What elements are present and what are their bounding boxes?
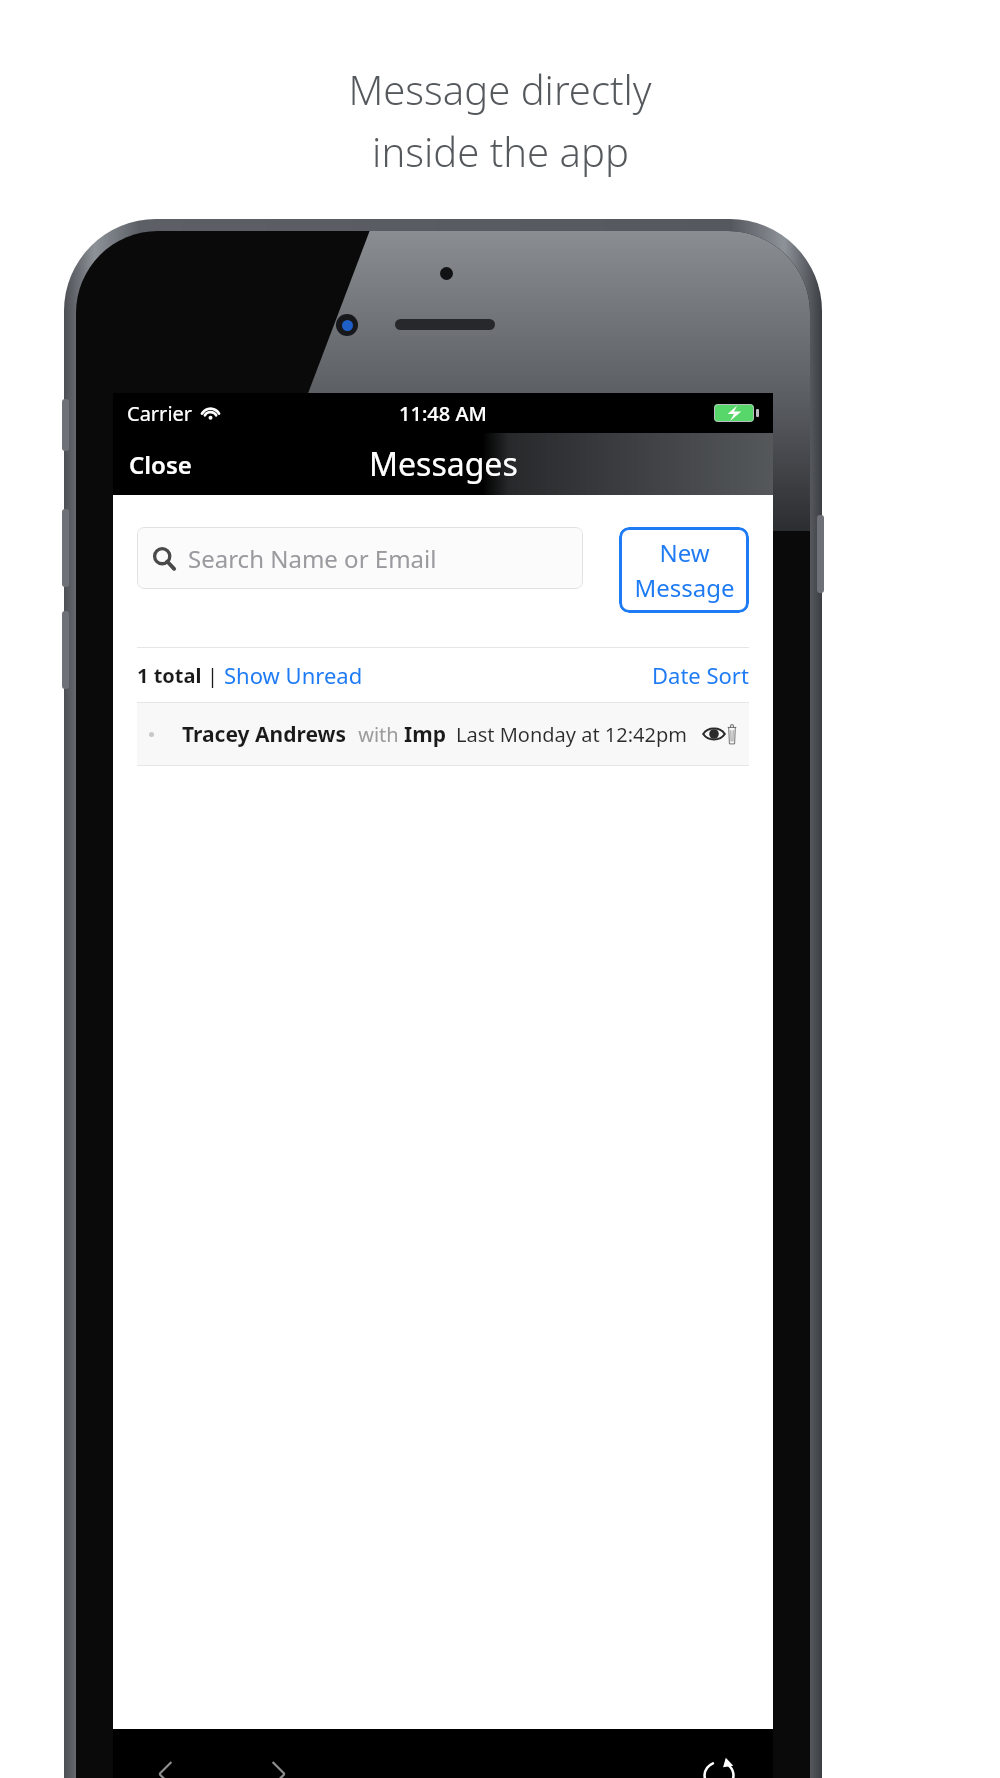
staticText: Date Sort: [652, 660, 749, 690]
staticText: Show Unread: [224, 660, 363, 690]
staticText: inside the app: [372, 124, 629, 178]
staticText: Carrier: [127, 400, 193, 427]
staticText: Close: [129, 448, 192, 481]
staticText: Messages: [369, 442, 518, 486]
button[interactable]: Reload: [691, 1746, 747, 1778]
button[interactable]: Tracey Andrews: [137, 703, 749, 765]
button[interactable]: Mark as read: [701, 721, 727, 747]
staticText: 11:48 AM: [399, 400, 487, 427]
button[interactable]: New: [619, 527, 749, 613]
staticText: with: [353, 721, 404, 748]
button[interactable]: Show Unread: [224, 660, 363, 690]
staticText: Message directly: [348, 62, 652, 116]
staticText: Message: [634, 571, 735, 604]
button[interactable]: Close: [113, 438, 208, 491]
button[interactable]: Delete: [727, 719, 737, 749]
staticText: Imp: [404, 720, 446, 749]
button[interactable]: Date Sort: [652, 660, 749, 690]
staticText: 1 total: [137, 662, 207, 689]
button[interactable]: Back: [139, 1747, 193, 1778]
staticText: New: [659, 536, 710, 569]
staticText: Last Monday at 12:42pm: [456, 721, 687, 748]
staticText: Search Name or Email: [188, 542, 437, 575]
staticText: Tracey Andrews: [182, 720, 347, 749]
button[interactable]: Forward: [251, 1747, 305, 1778]
button[interactable]: Search Name or Email: [137, 527, 583, 589]
staticText: |: [207, 662, 224, 689]
